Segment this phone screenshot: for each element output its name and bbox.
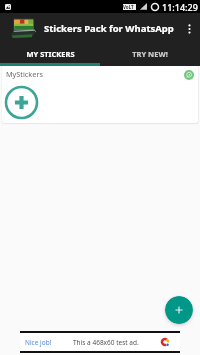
staticText: This a 468x60 test ad. xyxy=(73,338,139,347)
button[interactable]: MY STICKERS xyxy=(0,44,100,63)
staticText: MyStickers xyxy=(6,69,43,79)
button[interactable]: Add to WhatsApp xyxy=(184,70,194,80)
staticText: 11:14:29 xyxy=(162,1,198,13)
button[interactable]: Advertisement banner xyxy=(20,331,180,353)
button[interactable]: TRY NEW! xyxy=(100,44,200,63)
button[interactable]: MyStickers xyxy=(2,66,198,123)
staticText: Stickers Pack for WhatsApp xyxy=(44,22,174,35)
staticText: MY STICKERS xyxy=(26,49,75,59)
button[interactable]: Add sticker pack xyxy=(165,296,193,324)
staticText: VoLTE xyxy=(123,4,136,10)
staticText: TRY NEW! xyxy=(132,49,168,59)
staticText: Nice job! xyxy=(25,338,52,347)
button[interactable]: More options xyxy=(178,16,200,38)
